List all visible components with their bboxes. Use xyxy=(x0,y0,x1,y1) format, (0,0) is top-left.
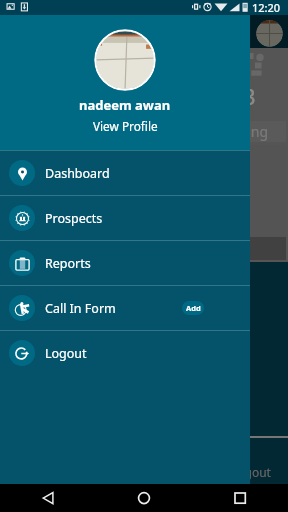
button[interactable]: Dashboard xyxy=(0,151,250,195)
staticText: 3 xyxy=(243,81,256,111)
button[interactable]: Reports xyxy=(0,241,250,285)
button[interactable]: Call In Form xyxy=(0,286,250,330)
button[interactable]: Prospects xyxy=(0,196,250,240)
staticText: Prospects xyxy=(45,210,103,227)
staticText: 12:20 xyxy=(252,0,281,15)
button[interactable]: View Profile xyxy=(93,118,158,134)
staticText: Reports xyxy=(45,255,91,272)
staticText: Polling xyxy=(223,122,269,141)
button[interactable]: Profile photo xyxy=(94,29,156,91)
button[interactable]: Add xyxy=(182,301,204,315)
staticText: View Profile xyxy=(93,118,158,134)
staticText: nadeem awan xyxy=(79,96,171,114)
staticText: Dashboard xyxy=(45,165,110,182)
button[interactable]: Back xyxy=(0,484,288,512)
staticText: Call In Form xyxy=(45,300,116,317)
staticText: Add xyxy=(186,303,201,313)
staticText: Logout xyxy=(45,345,87,362)
button[interactable]: Logout xyxy=(0,331,250,375)
staticText: Logout xyxy=(231,464,271,480)
